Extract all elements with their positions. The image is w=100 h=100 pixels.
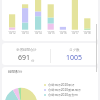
staticText: 分 <box>31 59 35 63</box>
button[interactable]: 合格物語2020重要用語 <box>44 87 81 92</box>
staticText: 1005 <box>66 53 83 63</box>
staticText: 10/13 <box>21 31 29 35</box>
staticText: 学習時間合計 <box>16 48 37 52</box>
staticText: 合格物語2020単語 <box>48 83 75 87</box>
staticText: 10/16 <box>59 31 67 35</box>
staticText: 10/12 <box>8 31 16 35</box>
staticText: 時間配分 <box>8 70 23 75</box>
staticText: 10/14 <box>34 31 42 35</box>
button[interactable]: ログ数 <box>50 43 98 65</box>
staticText: ログ数 <box>69 48 80 52</box>
staticText: 10/15 <box>47 31 55 35</box>
staticText: 合格物語2020重要用語 <box>48 88 81 92</box>
staticText: 691 <box>18 53 31 63</box>
button[interactable]: 学習時間合計 <box>2 43 50 65</box>
button[interactable]: 合格物語2020単語 <box>44 82 75 87</box>
staticText: 合格物語2020過去問 <box>48 93 78 97</box>
staticText: 10/18 <box>83 31 91 35</box>
button[interactable]: 合格物語2020過去問 <box>44 92 78 97</box>
staticText: 10/17 <box>71 31 79 35</box>
